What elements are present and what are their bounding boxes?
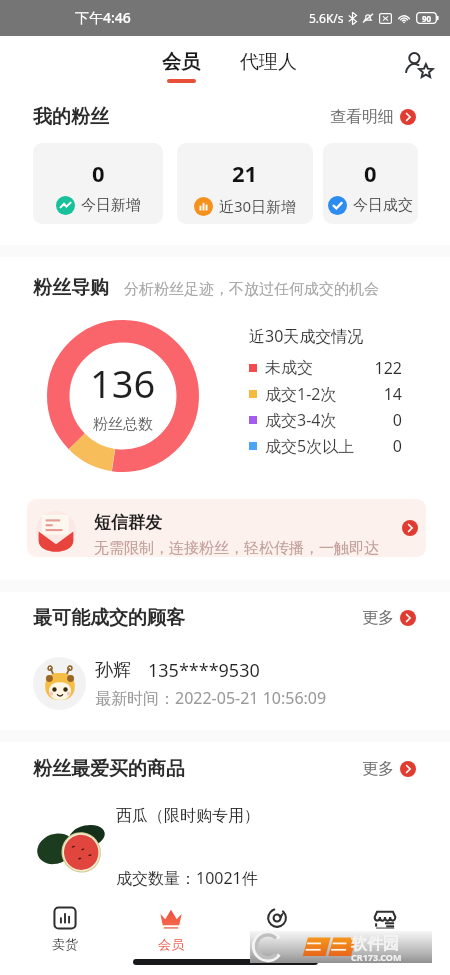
staticText: 无需限制，连接粉丝，轻松传播，一触即达: [94, 539, 379, 557]
staticText: 会员: [158, 936, 184, 952]
staticText: 近30天成交情况: [249, 325, 364, 347]
staticText: 今日成交: [353, 196, 413, 215]
staticText: 135****9530: [148, 658, 260, 683]
staticText: 短信群发: [94, 512, 162, 533]
staticText: 生意圈: [258, 936, 297, 952]
button[interactable]: 孙辉: [33, 657, 430, 710]
staticText: 成交3-4次: [265, 409, 337, 431]
staticText: 未成交: [265, 358, 313, 378]
staticText: 90: [422, 13, 432, 24]
staticText: 136: [90, 357, 156, 409]
button[interactable]: 会员: [118, 906, 224, 952]
staticText: 122: [367, 357, 402, 379]
staticText: 最可能成交的顾客: [33, 606, 185, 630]
staticText: 成交5次以上: [265, 435, 355, 457]
staticText: 下午4:46: [75, 8, 131, 27]
staticText: 粉丝总数: [93, 415, 153, 434]
button[interactable]: My profile: [401, 49, 434, 82]
button[interactable]: 更多: [362, 759, 416, 779]
button[interactable]: 查看明细: [330, 107, 416, 127]
staticText: 我的粉丝: [33, 105, 109, 129]
staticText: 0: [367, 435, 402, 457]
staticText: 成交1-2次: [265, 383, 337, 405]
staticText: 近30日新增: [219, 196, 297, 216]
button[interactable]: 生意圈: [224, 906, 331, 952]
staticText: CR173.COM: [351, 951, 402, 963]
button[interactable]: 0: [33, 143, 163, 224]
button[interactable]: 代理人: [240, 50, 297, 74]
staticText: 今日新增: [81, 196, 141, 215]
button[interactable]: 短信群发: [27, 499, 426, 557]
staticText: 西瓜（限时购专用）: [116, 806, 260, 826]
staticText: 最新时间：2022-05-21 10:56:09: [95, 687, 327, 709]
staticText: 成交数量：10021件: [116, 867, 258, 889]
staticText: 0: [92, 158, 105, 188]
staticText: 0: [364, 158, 377, 188]
button[interactable]: 0: [323, 143, 418, 224]
staticText: 14: [367, 383, 402, 405]
staticText: 0: [367, 409, 402, 431]
button[interactable]: 会员: [162, 50, 200, 83]
staticText: 粉丝最爱买的商品: [33, 757, 185, 781]
staticText: 店铺: [372, 936, 398, 952]
staticText: 更多: [362, 608, 394, 628]
button[interactable]: 21: [177, 143, 313, 224]
button[interactable]: 卖货: [12, 906, 118, 952]
button[interactable]: 店铺: [331, 906, 438, 952]
staticText: 孙辉: [95, 659, 131, 682]
staticText: 5.6K/s: [309, 10, 344, 26]
staticText: 软件园: [351, 934, 399, 954]
staticText: 卖货: [52, 936, 78, 952]
staticText: 21: [232, 158, 258, 188]
staticText: 会员: [162, 50, 200, 74]
button[interactable]: 西瓜（限时购专用）: [30, 806, 430, 889]
staticText: 查看明细: [330, 107, 394, 127]
staticText: 粉丝导购: [33, 276, 109, 300]
button[interactable]: 更多: [362, 608, 416, 628]
staticText: 代理人: [240, 50, 297, 74]
staticText: 更多: [362, 759, 394, 779]
staticText: 分析粉丝足迹，不放过任何成交的机会: [124, 280, 379, 299]
